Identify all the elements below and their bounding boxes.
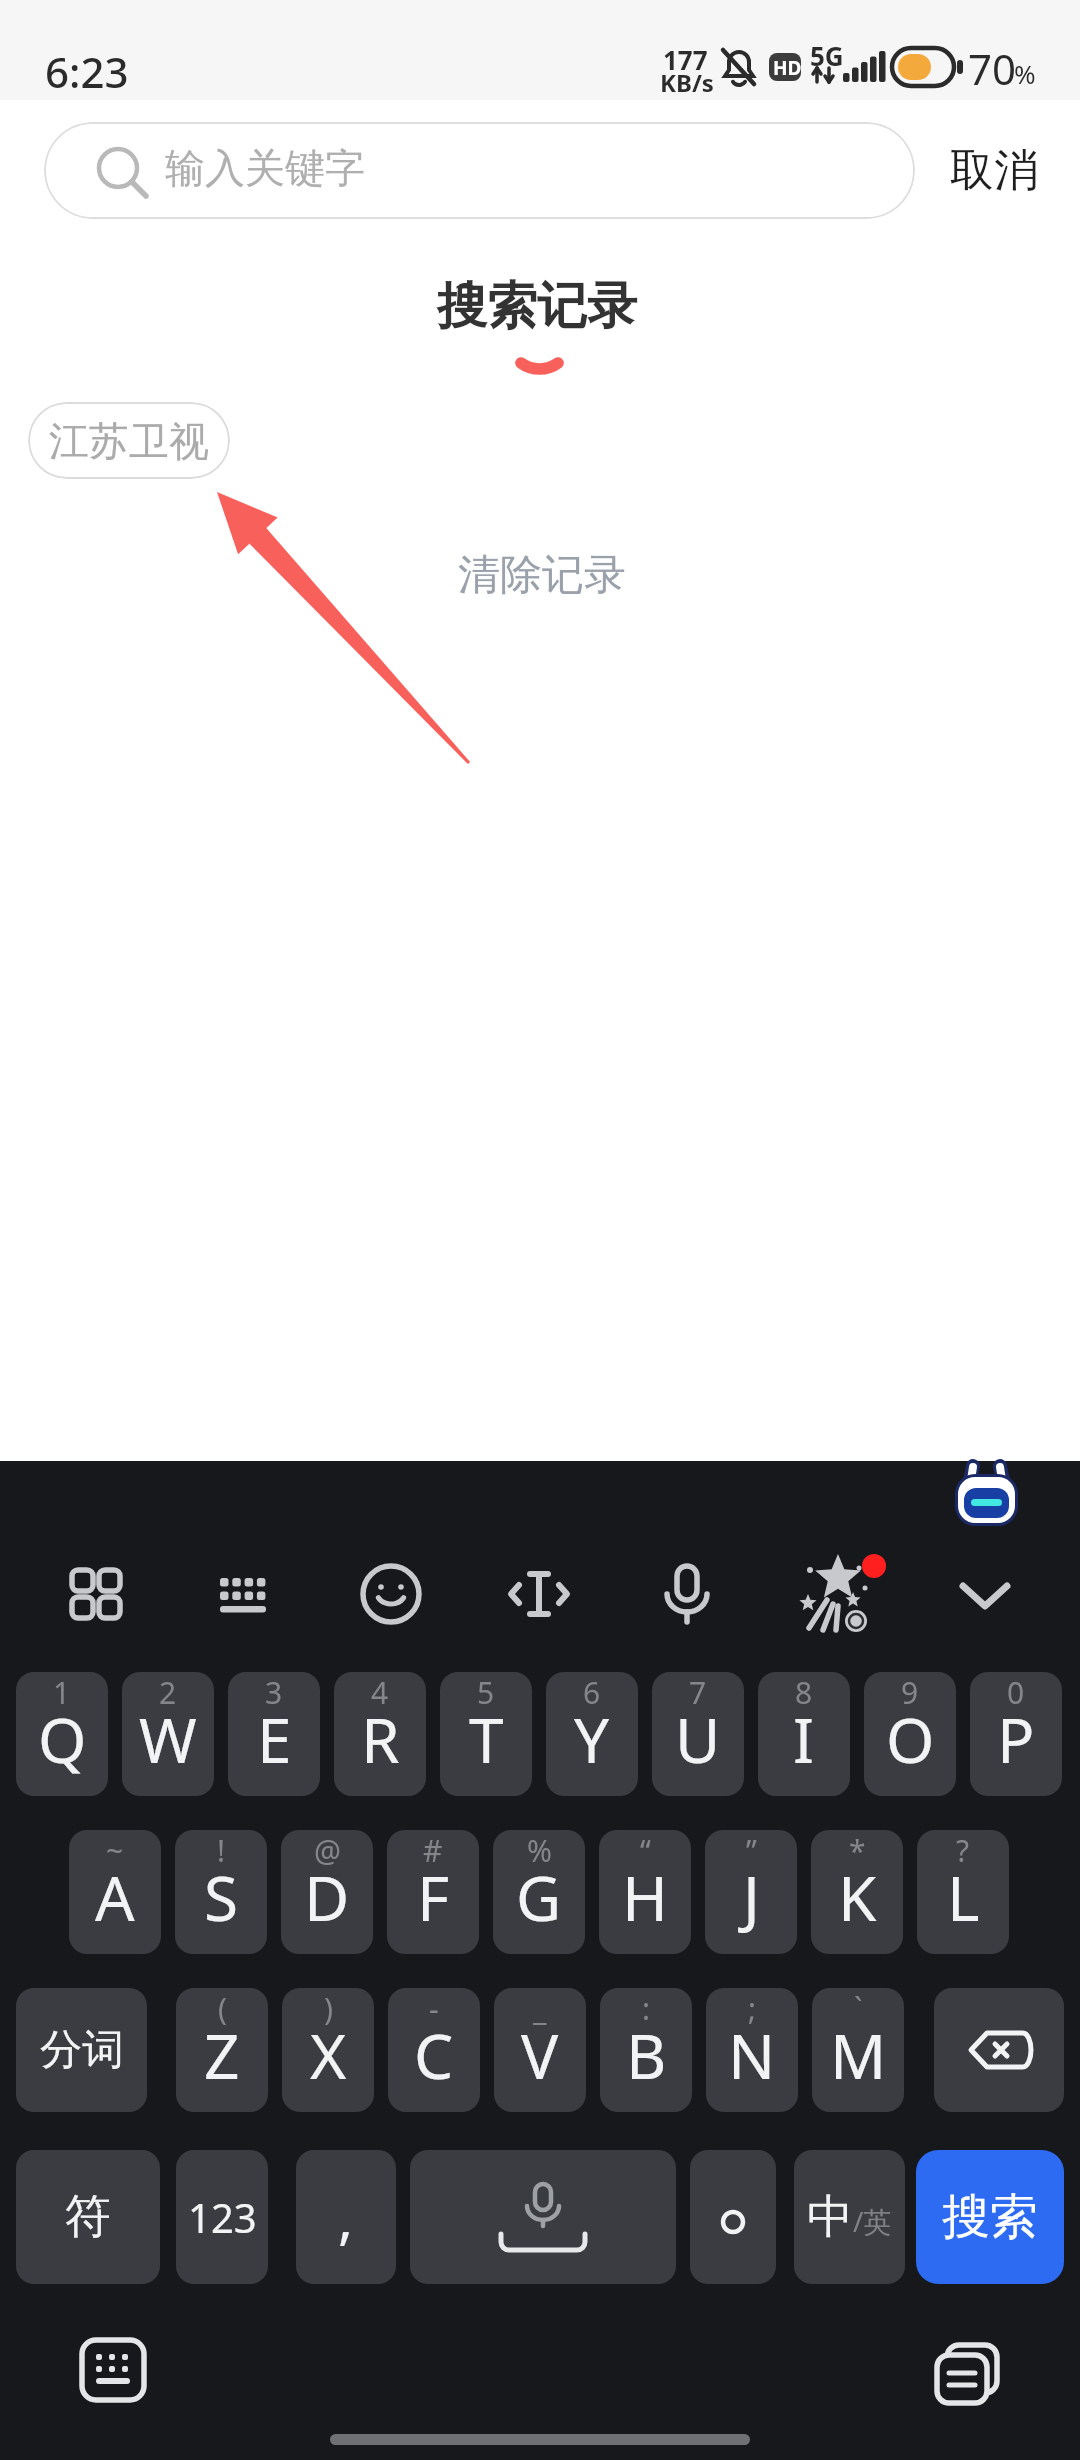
button[interactable]: 分词 [16,1988,147,2112]
staticText: * [849,1830,866,1871]
staticText: 177 [663,42,708,77]
staticText: # [423,1830,443,1871]
staticText: J [743,1855,760,1939]
button[interactable]: # [387,1830,479,1954]
button[interactable] [346,1556,436,1636]
button[interactable]: ) [282,1988,374,2112]
staticText: Z [204,2013,240,2097]
button[interactable]: 取消 [944,130,1044,210]
button[interactable]: , [296,2150,396,2284]
staticText: “ [640,1830,651,1871]
button[interactable] [690,2150,776,2284]
staticText: ~ [106,1830,124,1871]
button[interactable] [940,1556,1030,1636]
button[interactable]: ( [176,1988,268,2112]
staticText: 分词 [40,2024,124,2077]
staticText: /英 [853,2202,892,2240]
button[interactable]: ~ [69,1830,161,1954]
staticText: Y [574,1697,610,1781]
staticText: % [527,1830,552,1871]
staticText: 中 [807,2188,853,2246]
staticText: 取消 [950,143,1038,198]
button[interactable]: 搜索 [916,2150,1064,2284]
button[interactable]: % [493,1830,585,1954]
staticText: 123 [188,2190,257,2244]
staticText: H [622,1855,668,1939]
staticText: , [338,2179,354,2255]
button[interactable]: 123 [176,2150,268,2284]
staticText: 2 [159,1672,177,1713]
button[interactable] [790,1556,880,1636]
button[interactable]: ” [705,1830,797,1954]
staticText: 70 [968,40,1017,97]
button[interactable] [952,1463,1022,1529]
button[interactable]: 7 [652,1672,744,1796]
button[interactable] [925,2333,1009,2413]
staticText: K [838,1855,877,1939]
staticText: B [626,2013,667,2097]
staticText: _ [533,1988,547,2029]
staticText: A [95,1855,135,1939]
staticText: ( [218,1988,227,2029]
button[interactable]: ! [175,1830,267,1954]
staticText: C [414,2013,454,2097]
button[interactable] [198,1556,288,1636]
button[interactable]: 清除记录 [452,545,632,605]
staticText: N [728,2013,776,2097]
staticText: 1 [53,1672,71,1713]
staticText: 搜索记录 [437,275,637,338]
staticText: : [642,1988,651,2029]
staticText: G [516,1855,562,1939]
staticText: 6 [583,1672,601,1713]
staticText: L [947,1855,980,1939]
button[interactable]: 9 [864,1672,956,1796]
staticText: 5G [810,38,844,73]
staticText: I [793,1697,815,1781]
staticText: S [204,1855,239,1939]
button[interactable]: 0 [970,1672,1062,1796]
staticText: @ [314,1830,341,1871]
button[interactable]: 2 [122,1672,214,1796]
button[interactable]: 8 [758,1672,850,1796]
button[interactable] [410,2150,676,2284]
staticText: 6:23 [45,43,129,100]
staticText: % [1014,56,1036,91]
button[interactable] [642,1556,732,1636]
button[interactable]: “ [599,1830,691,1954]
staticText: V [521,2013,559,2097]
button[interactable]: @ [281,1830,373,1954]
staticText: 输入关键字 [165,143,365,193]
staticText: E [257,1697,292,1781]
staticText: T [469,1697,504,1781]
button[interactable]: ? [917,1830,1009,1954]
staticText: 0 [1007,1672,1025,1713]
button[interactable]: : [600,1988,692,2112]
button[interactable]: - [388,1988,480,2112]
button[interactable]: ; [706,1988,798,2112]
button[interactable] [51,1556,141,1636]
button[interactable]: _ [494,1988,586,2112]
button[interactable]: * [811,1830,903,1954]
staticText: 符 [65,2188,111,2246]
button[interactable]: 符 [16,2150,160,2284]
button[interactable]: 中 [794,2150,905,2284]
button[interactable]: 3 [228,1672,320,1796]
staticText: 8 [795,1672,813,1713]
staticText: 4 [371,1672,389,1713]
staticText: ? [956,1830,970,1871]
button[interactable]: 4 [334,1672,426,1796]
button[interactable]: 输入关键字 [44,122,915,219]
button[interactable] [934,1988,1064,2112]
button[interactable]: 1 [16,1672,108,1796]
staticText: 搜索 [942,2187,1038,2247]
button[interactable]: 江苏卫视 [28,402,230,479]
staticText: O [886,1697,935,1781]
staticText: P [997,1697,1035,1781]
button[interactable] [494,1556,584,1636]
button[interactable]: ` [812,1988,904,2112]
button[interactable] [70,2328,156,2412]
staticText: U [675,1697,721,1781]
button[interactable]: 6 [546,1672,638,1796]
button[interactable]: 5 [440,1672,532,1796]
staticText: ` [854,1988,863,2029]
